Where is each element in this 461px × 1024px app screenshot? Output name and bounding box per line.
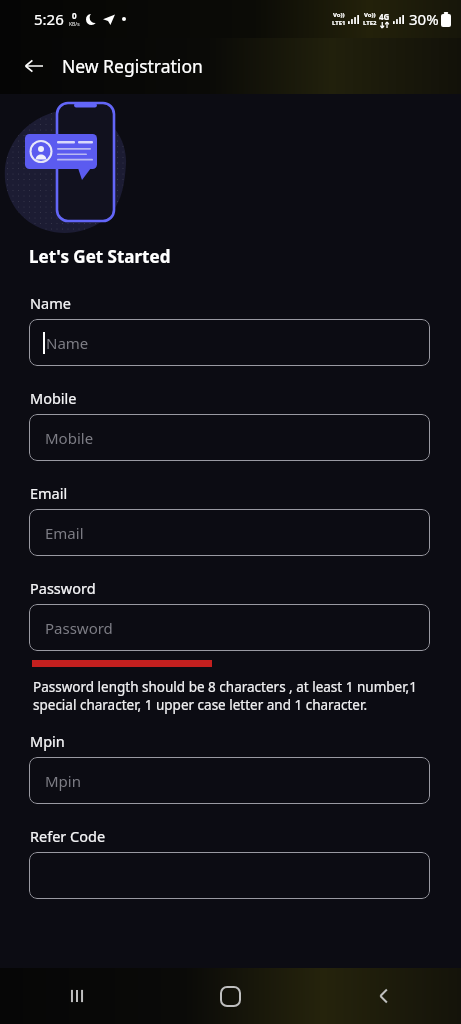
staticText: Mobile (45, 428, 94, 448)
staticText: 5:26 (34, 9, 64, 29)
staticText: New Registration (62, 54, 203, 78)
staticText: 4G (379, 11, 390, 22)
button[interactable]: Back (307, 968, 461, 1024)
staticText: Name (46, 333, 89, 353)
button[interactable]: Mpin (29, 757, 430, 804)
staticText: Mobile (30, 388, 77, 408)
button[interactable] (29, 852, 430, 899)
staticText: Refer Code (30, 826, 106, 846)
staticText: LTE1 (332, 19, 346, 27)
staticText: Vo)) (333, 11, 345, 19)
staticText: Mpin (45, 771, 81, 791)
staticText: Email (30, 483, 68, 503)
button[interactable]: Home (153, 968, 307, 1024)
staticText: Vo)) (364, 11, 376, 19)
button[interactable]: Name (29, 319, 430, 366)
staticText: Name (30, 293, 71, 313)
staticText: Email (45, 523, 84, 543)
button[interactable]: Mobile (29, 414, 430, 461)
staticText: KB/s (69, 21, 80, 28)
staticText: Password (45, 618, 113, 638)
staticText: Let's Get Started (29, 245, 171, 268)
button[interactable]: Recent apps (0, 968, 153, 1024)
staticText: LTE2 (363, 19, 377, 27)
staticText: Password length should be 8 characters ,… (33, 678, 431, 714)
button[interactable]: Password (29, 604, 430, 651)
staticText: Password (30, 578, 96, 598)
staticText: 30% (409, 9, 439, 29)
staticText: 0 (72, 10, 77, 21)
staticText: Mpin (30, 731, 65, 751)
button[interactable]: Back (16, 48, 52, 84)
button[interactable]: Email (29, 509, 430, 556)
